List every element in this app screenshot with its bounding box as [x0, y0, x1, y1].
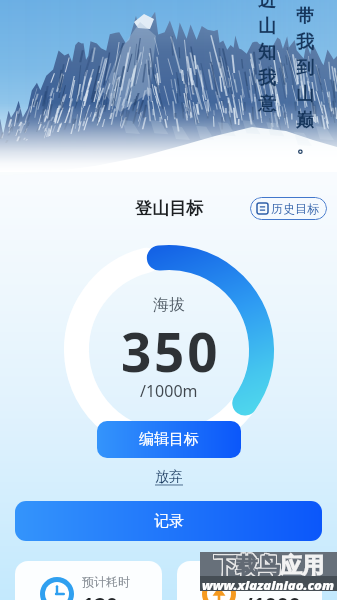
staticText: 。 — [296, 135, 314, 158]
staticText: 山 — [258, 15, 276, 38]
staticText: 记录 — [154, 512, 184, 531]
staticText: www.xlazalniao.com — [202, 576, 335, 591]
staticText: 我 — [258, 67, 276, 90]
staticText: 下载鸟 — [213, 551, 279, 576]
button[interactable]: 编辑目标 — [97, 421, 241, 458]
staticText: 历史目标 — [271, 201, 319, 216]
staticText: 知 — [258, 41, 276, 64]
staticText: 带 — [296, 5, 314, 28]
staticText: 编辑目标 — [139, 430, 199, 449]
staticText: 应用 — [280, 552, 324, 577]
staticText: 下载鸟 — [213, 552, 279, 577]
staticText: /1000m — [140, 380, 198, 402]
staticText: 350 — [121, 315, 221, 387]
staticText: 下载鸟 — [214, 553, 280, 578]
staticText: 海拔 — [153, 295, 185, 315]
staticText: 放弃 — [155, 468, 183, 486]
button[interactable]: 登山目标 — [135, 198, 203, 219]
staticText: 进 — [258, 0, 276, 12]
button[interactable]: Duration — [15, 561, 162, 600]
staticText: 下载鸟 — [214, 552, 280, 577]
staticText: 意 — [258, 93, 276, 116]
staticText: 山 — [296, 83, 314, 106]
button[interactable]: 记录 — [15, 501, 322, 541]
button[interactable]: 放弃 — [155, 468, 183, 486]
other: Ascent — [202, 577, 236, 600]
button[interactable]: Ascent — [177, 561, 322, 600]
staticText: 下载鸟 — [213, 553, 279, 578]
staticText: 登山目标 — [135, 198, 203, 219]
staticText: 120 — [82, 591, 119, 600]
staticText: 我 — [296, 31, 314, 54]
staticText: 下载鸟 — [215, 553, 281, 578]
staticText: 巅 — [296, 109, 314, 132]
staticText: 下载鸟 — [215, 552, 281, 577]
staticText: 下载鸟 — [215, 551, 281, 576]
staticText: /1000 — [244, 591, 301, 600]
staticText: 预计耗时 — [82, 574, 130, 589]
button[interactable]: 历史目标 — [257, 197, 319, 220]
other: Duration — [40, 577, 74, 600]
staticText: 下载鸟 — [214, 551, 280, 576]
staticText: 到 — [296, 57, 314, 80]
staticText: 已爬升 — [244, 574, 280, 589]
